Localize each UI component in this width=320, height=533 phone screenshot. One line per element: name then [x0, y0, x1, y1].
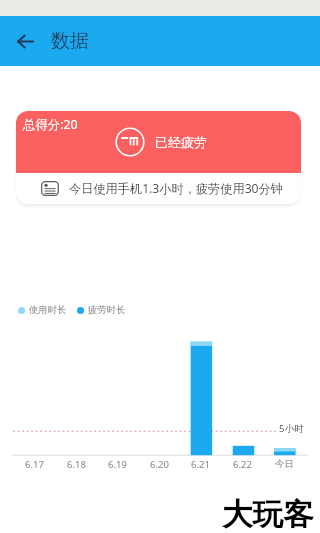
- staticText: 6.18: [67, 458, 86, 471]
- staticText: 总得分:20: [23, 116, 78, 133]
- button[interactable]: 总得分:20: [16, 111, 301, 204]
- staticText: 6.17: [25, 458, 44, 471]
- staticText: 数据: [51, 29, 89, 53]
- staticText: 已经疲劳: [155, 134, 207, 150]
- staticText: 使用时长: [29, 304, 67, 316]
- staticText: 6.19: [108, 458, 127, 471]
- staticText: 6.21: [191, 458, 210, 471]
- button[interactable]: Back: [9, 25, 41, 57]
- staticText: 今日使用手机1.3小时，疲劳使用30分钟: [69, 180, 283, 197]
- staticText: 疲劳时长: [88, 304, 126, 316]
- staticText: 6.20: [150, 458, 169, 471]
- staticText: 6.22: [233, 458, 252, 471]
- staticText: 今日: [275, 458, 294, 470]
- staticText: 5小时: [279, 422, 304, 435]
- staticText: 大玩客: [222, 496, 314, 533]
